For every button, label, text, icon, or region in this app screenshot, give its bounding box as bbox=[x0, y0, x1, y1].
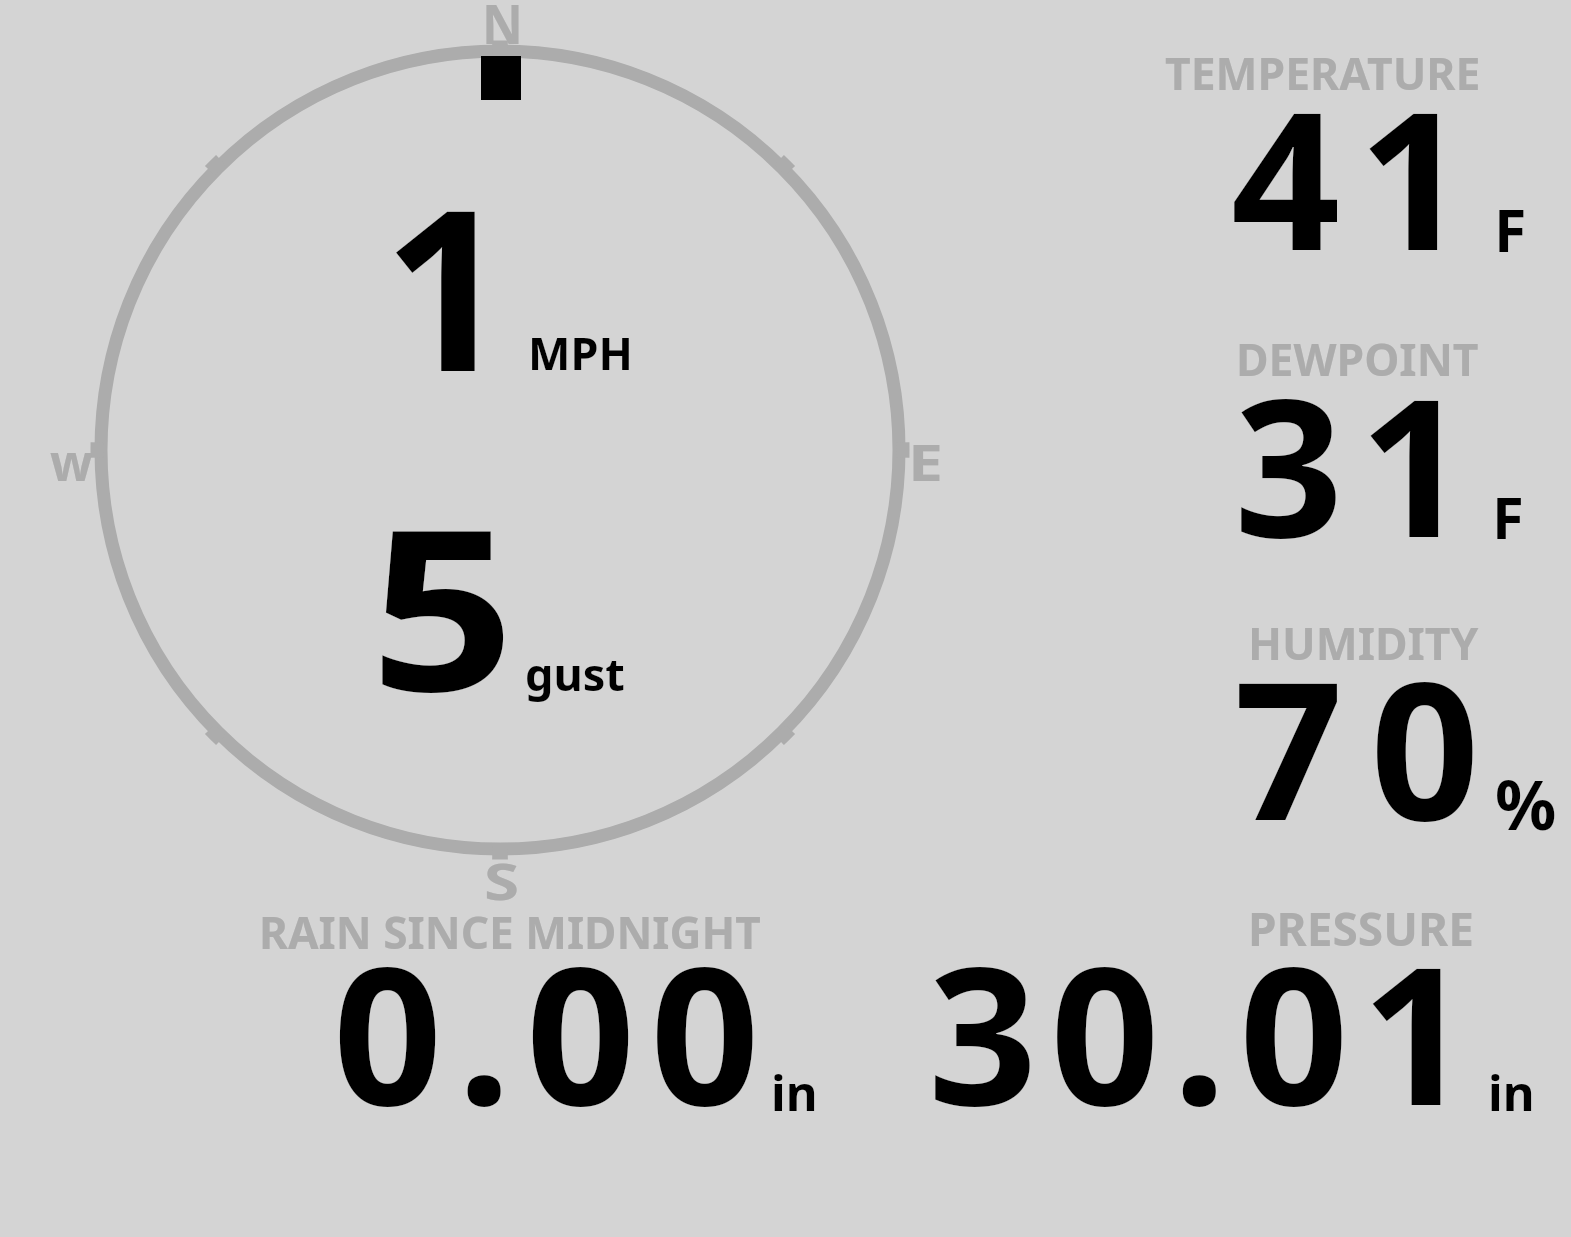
staticText: 41 bbox=[1231, 46, 1486, 306]
staticText: 0.00 bbox=[333, 901, 775, 1161]
staticText: HUMIDITY bbox=[1248, 612, 1479, 673]
staticText: PRESSURE bbox=[1248, 897, 1474, 960]
staticText: E bbox=[908, 428, 943, 496]
staticText: RAIN SINCE MIDNIGHT bbox=[259, 902, 761, 962]
button[interactable]: Wind from the north, 1 miles per hour, g… bbox=[40, 0, 960, 910]
button[interactable]: Pressure 30.01 inches bbox=[920, 905, 1540, 1120]
staticText: MPH bbox=[528, 322, 633, 383]
staticText: DEWPOINT bbox=[1236, 328, 1479, 389]
staticText: w bbox=[50, 428, 93, 496]
staticText: 70 bbox=[1234, 616, 1507, 876]
staticText: S bbox=[484, 845, 520, 914]
staticText: 5 bbox=[370, 454, 532, 756]
staticText: % bbox=[1495, 757, 1557, 850]
staticText: F bbox=[1494, 189, 1527, 269]
button[interactable]: Humidity 70 percent bbox=[1150, 619, 1571, 831]
staticText: 31 bbox=[1234, 333, 1485, 593]
staticText: gust bbox=[525, 643, 625, 704]
staticText: 30.01 bbox=[928, 901, 1484, 1161]
staticText: F bbox=[1492, 477, 1524, 556]
button[interactable]: Dewpoint 31 degrees Fahrenheit bbox=[1150, 335, 1571, 545]
staticText: in bbox=[771, 1059, 818, 1126]
staticText: in bbox=[1488, 1059, 1535, 1126]
staticText: TEMPERATURE bbox=[1165, 42, 1481, 103]
staticText: N bbox=[482, 0, 524, 59]
staticText: 1 bbox=[383, 134, 525, 436]
button[interactable]: Rain since midnight 0.00 inches bbox=[250, 905, 830, 1120]
button[interactable]: Temperature 41 degrees Fahrenheit bbox=[1150, 50, 1571, 260]
